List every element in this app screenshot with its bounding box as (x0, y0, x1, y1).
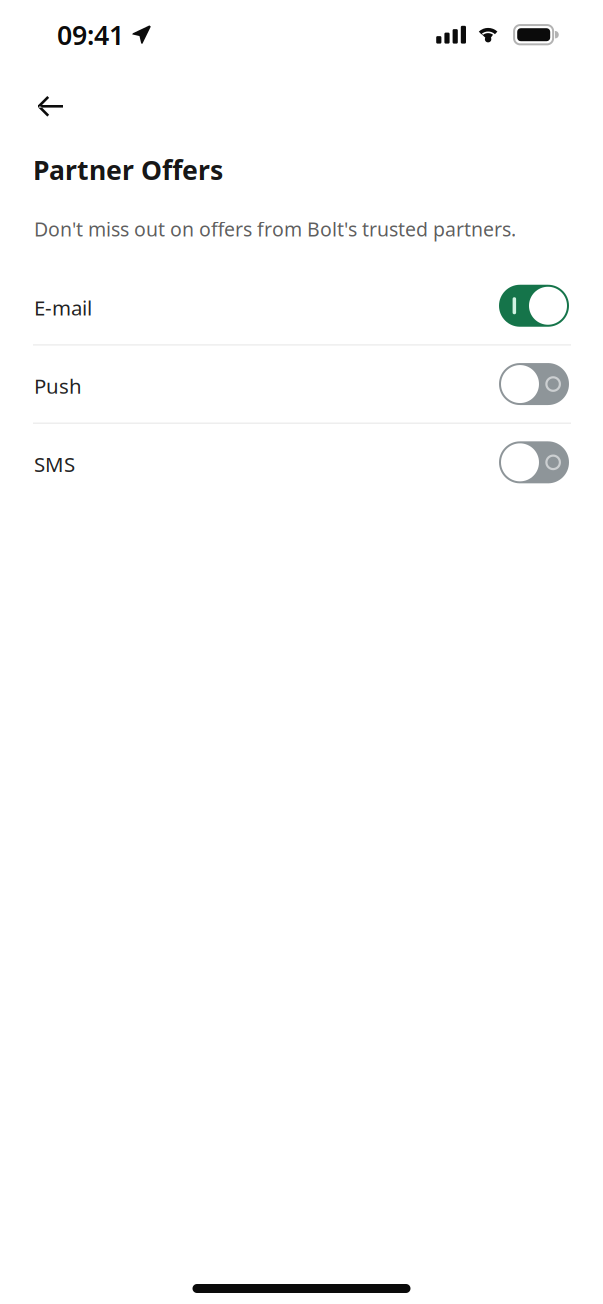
staticText: 09:41 (57, 17, 124, 52)
button[interactable]: Back (0, 62, 87, 131)
button[interactable]: Push (0, 346, 603, 423)
staticText: SMS (34, 450, 75, 478)
staticText: Push (34, 372, 82, 400)
staticText: Partner Offers (33, 152, 223, 188)
staticText: E-mail (34, 294, 92, 321)
button[interactable]: SMS (0, 424, 603, 501)
staticText: Don't miss out on offers from Bolt's tru… (34, 216, 516, 242)
button[interactable]: E-mail (0, 267, 603, 344)
